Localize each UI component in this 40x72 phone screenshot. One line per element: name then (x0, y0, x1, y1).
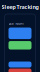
staticText: Sleep Tracking (1, 3, 38, 11)
staticText: LAST NIGHT (8, 22, 24, 25)
